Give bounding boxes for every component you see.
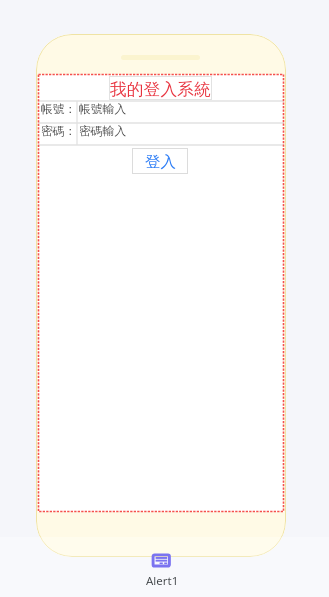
- staticText: 密碼：: [41, 124, 77, 139]
- staticText: 登入: [145, 152, 176, 172]
- staticText: 帳號輸入: [79, 102, 127, 117]
- staticText: 帳號：: [41, 102, 77, 117]
- staticText: 我的登入系統: [110, 79, 211, 100]
- staticText: 密碼輸入: [79, 124, 127, 139]
- button[interactable]: Alert1: [151, 553, 172, 568]
- button[interactable]: 登入: [132, 148, 188, 174]
- staticText: Alert1: [146, 573, 179, 589]
